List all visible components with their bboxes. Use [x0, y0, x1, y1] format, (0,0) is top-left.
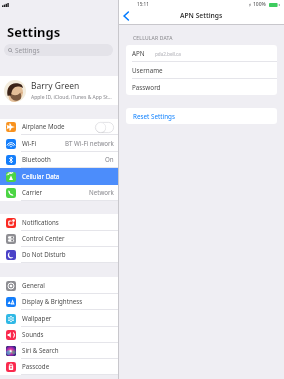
- button[interactable]: Password: [126, 79, 277, 95]
- staticText: Siri & Search: [22, 346, 59, 354]
- button[interactable]: Do Not Disturb: [0, 247, 118, 263]
- staticText: Password: [132, 83, 161, 92]
- staticText: BT Wi-Fi network: [65, 139, 114, 147]
- staticText: Do Not Disturb: [22, 250, 66, 258]
- staticText: APN: [132, 49, 145, 58]
- button[interactable]: Cellular Data: [0, 168, 118, 185]
- button[interactable]: Reset Settings: [126, 108, 277, 124]
- staticText: Network: [89, 188, 114, 196]
- staticText: Settings: [7, 23, 61, 41]
- button[interactable]: Airplane Mode toggle: [95, 122, 114, 133]
- staticText: Cellular Data: [22, 172, 60, 180]
- button[interactable]: Sounds: [0, 327, 118, 343]
- button[interactable]: Settings: [4, 44, 113, 56]
- staticText: General: [22, 281, 45, 289]
- button[interactable]: General: [0, 277, 118, 294]
- button[interactable]: Notifications: [0, 214, 118, 231]
- staticText: Control Center: [22, 234, 65, 242]
- staticText: Username: [132, 66, 163, 75]
- staticText: On: [105, 155, 114, 163]
- button[interactable]: Username: [126, 62, 277, 78]
- button[interactable]: Display & Brightness: [0, 294, 118, 310]
- staticText: Barry Green: [31, 80, 80, 92]
- staticText: Apple ID, iCloud, iTunes & App St…: [31, 94, 112, 101]
- staticText: Airplane Mode: [22, 122, 65, 130]
- staticText: Settings: [15, 46, 40, 55]
- button[interactable]: Passcode: [0, 359, 118, 375]
- button[interactable]: Control Center: [0, 231, 118, 247]
- staticText: CELLULAR DATA: [133, 35, 173, 42]
- staticText: 100%: [253, 1, 266, 8]
- button[interactable]: APN: [126, 45, 277, 61]
- staticText: Bluetooth: [22, 155, 51, 163]
- staticText: Wi-Fi: [22, 139, 37, 147]
- button[interactable]: Airplane Mode: [0, 119, 118, 135]
- staticText: Notifications: [22, 218, 59, 226]
- button[interactable]: Back: [120, 10, 132, 22]
- staticText: Display & Brightness: [22, 297, 83, 305]
- button[interactable]: Wi-Fi: [0, 135, 118, 152]
- button[interactable]: Carrier: [0, 185, 118, 201]
- staticText: pda2.bell.ca: [155, 51, 181, 57]
- staticText: Passcode: [22, 362, 50, 370]
- button[interactable]: Siri & Search: [0, 343, 118, 359]
- staticText: 15:11: [137, 1, 149, 7]
- staticText: APN Settings: [180, 11, 223, 20]
- staticText: Carrier: [22, 188, 43, 196]
- staticText: Wallpaper: [22, 314, 52, 322]
- button[interactable]: Wallpaper: [0, 310, 118, 327]
- button[interactable]: Bluetooth: [0, 152, 118, 168]
- button[interactable]: Barry Green: [0, 76, 118, 105]
- staticText: Reset Settings: [133, 112, 175, 121]
- staticText: Sounds: [22, 330, 44, 338]
